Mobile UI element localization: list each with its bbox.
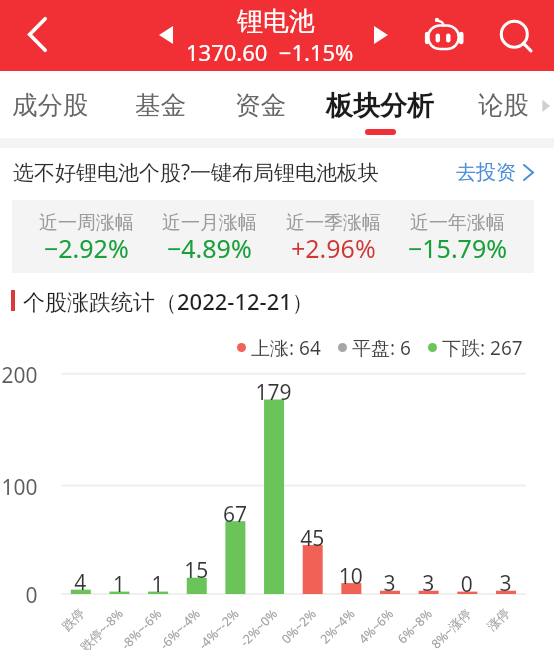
staticText: −2.92% bbox=[44, 231, 129, 265]
staticText: 上涨: 64 bbox=[251, 335, 321, 359]
staticText: +2.96% bbox=[291, 231, 376, 265]
staticText: 板块分析 bbox=[326, 89, 434, 123]
staticText: 锂电池 bbox=[237, 5, 315, 38]
button[interactable]: Next sector bbox=[361, 13, 401, 57]
button[interactable]: AI assistant bbox=[420, 12, 470, 58]
button[interactable]: 板块分析 bbox=[320, 79, 440, 137]
button[interactable]: Previous sector bbox=[146, 13, 186, 57]
staticText: 资金 bbox=[235, 89, 286, 121]
staticText: 论股 bbox=[478, 89, 529, 121]
staticText: 近一周涨幅 bbox=[39, 211, 134, 235]
staticText: 平盘: 6 bbox=[352, 335, 411, 359]
staticText: 去投资 bbox=[456, 160, 516, 185]
staticText: 近一月涨幅 bbox=[162, 211, 257, 235]
staticText: 基金 bbox=[135, 89, 186, 121]
button[interactable]: 成分股 bbox=[5, 79, 95, 137]
button[interactable]: More tabs bbox=[530, 88, 554, 124]
button[interactable]: 选不好锂电池个股?一键布局锂电池板块 bbox=[0, 150, 554, 194]
staticText: 下跌: 267 bbox=[442, 335, 523, 359]
staticText: 选不好锂电池个股?一键布局锂电池板块 bbox=[13, 158, 380, 187]
button[interactable]: Search bbox=[490, 12, 538, 58]
button[interactable]: Back bbox=[8, 6, 66, 64]
staticText: −4.89% bbox=[167, 231, 252, 265]
staticText: 近一季涨幅 bbox=[286, 211, 381, 235]
staticText: 1370.60 −1.15% bbox=[186, 37, 354, 67]
staticText: −15.79% bbox=[408, 231, 507, 265]
button[interactable]: 基金 bbox=[115, 79, 205, 137]
button[interactable]: 论股 bbox=[458, 79, 548, 137]
staticText: 近一年涨幅 bbox=[410, 211, 505, 235]
staticText: 成分股 bbox=[12, 89, 89, 121]
staticText: 个股涨跌统计（2022-12-21） bbox=[23, 286, 314, 314]
button[interactable]: 资金 bbox=[215, 79, 305, 137]
